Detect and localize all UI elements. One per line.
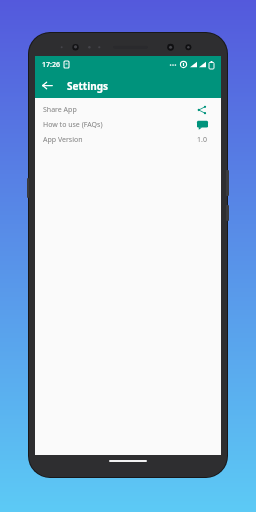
staticText: Share App (43, 105, 191, 115)
other: Share (197, 105, 207, 115)
staticText: Settings (67, 79, 108, 93)
button[interactable]: Share App (35, 102, 221, 117)
button[interactable]: App Version (35, 132, 221, 147)
staticText: How to use (FAQs) (43, 120, 191, 130)
button[interactable]: Back (35, 73, 60, 98)
staticText: App Version (43, 135, 191, 145)
staticText: 1.0 (197, 135, 207, 145)
other: How to use FAQs (197, 120, 208, 130)
staticText: 17:26 (42, 60, 60, 70)
button[interactable]: How to use (FAQs) (35, 117, 221, 132)
